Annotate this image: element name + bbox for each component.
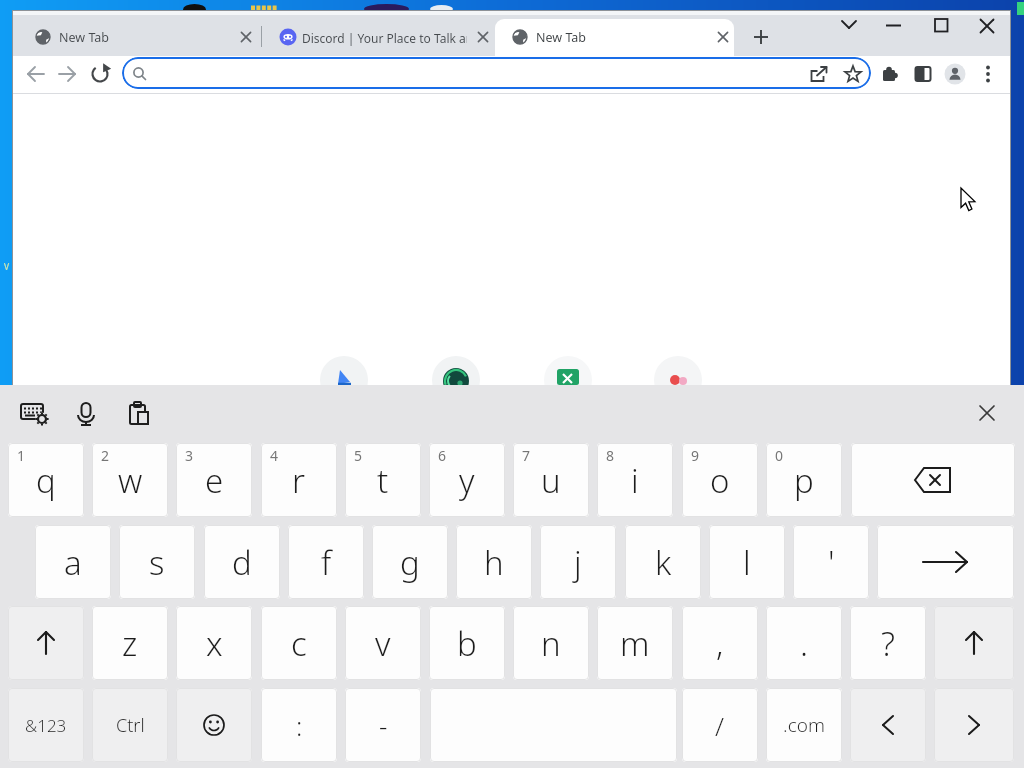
- button[interactable]: [944, 63, 966, 85]
- button[interactable]: j: [540, 525, 616, 599]
- button[interactable]: [912, 63, 934, 85]
- button[interactable]: u: [513, 443, 589, 517]
- button[interactable]: :: [261, 688, 337, 762]
- staticText: -: [379, 708, 388, 743]
- button[interactable]: New Tab: [495, 19, 734, 56]
- button[interactable]: l: [709, 525, 785, 599]
- staticText: t: [377, 458, 389, 503]
- staticText: ?: [881, 621, 895, 666]
- staticText: 4: [270, 446, 279, 465]
- staticText: b: [457, 621, 477, 666]
- button[interactable]: ,: [682, 606, 758, 680]
- staticText: q: [36, 458, 56, 503]
- button[interactable]: [122, 57, 871, 89]
- button[interactable]: s: [119, 525, 195, 599]
- button[interactable]: [8, 606, 84, 680]
- button[interactable]: o: [682, 443, 758, 517]
- button[interactable]: e: [176, 443, 252, 517]
- button[interactable]: ': [793, 525, 869, 599]
- button[interactable]: t: [345, 443, 421, 517]
- button[interactable]: [89, 63, 111, 85]
- button[interactable]: ?: [850, 606, 926, 680]
- staticText: 5: [354, 446, 363, 465]
- button[interactable]: -: [345, 688, 421, 762]
- staticText: z: [122, 621, 138, 666]
- button[interactable]: [25, 63, 47, 85]
- button[interactable]: b: [429, 606, 505, 680]
- button[interactable]: [850, 688, 926, 762]
- button[interactable]: .com: [766, 688, 842, 762]
- button[interactable]: [877, 525, 1014, 599]
- button[interactable]: p: [766, 443, 842, 517]
- button[interactable]: g: [372, 525, 448, 599]
- staticText: y: [459, 458, 475, 503]
- staticText: f: [321, 540, 332, 585]
- staticText: v: [375, 621, 391, 666]
- button[interactable]: [842, 63, 864, 85]
- button[interactable]: w: [92, 443, 168, 517]
- staticText: n: [541, 621, 561, 666]
- button[interactable]: .: [766, 606, 842, 680]
- button[interactable]: [238, 29, 254, 45]
- button[interactable]: a: [35, 525, 111, 599]
- button[interactable]: z: [92, 606, 168, 680]
- button[interactable]: q: [8, 443, 84, 517]
- staticText: k: [655, 540, 672, 585]
- staticText: /: [715, 708, 725, 743]
- button[interactable]: [74, 400, 98, 428]
- button[interactable]: [56, 63, 78, 85]
- staticText: New Tab: [536, 29, 587, 46]
- staticText: 0: [775, 446, 784, 465]
- button[interactable]: n: [513, 606, 589, 680]
- button[interactable]: k: [625, 525, 701, 599]
- button[interactable]: [934, 18, 949, 33]
- button[interactable]: x: [176, 606, 252, 680]
- button[interactable]: [130, 64, 150, 84]
- button[interactable]: h: [456, 525, 532, 599]
- button[interactable]: d: [204, 525, 280, 599]
- staticText: j: [574, 540, 582, 585]
- button[interactable]: i: [597, 443, 673, 517]
- staticText: ': [828, 540, 835, 585]
- staticText: 7: [522, 446, 531, 465]
- button[interactable]: v: [345, 606, 421, 680]
- button[interactable]: [851, 443, 1015, 517]
- button[interactable]: [879, 63, 901, 85]
- button[interactable]: Ctrl: [92, 688, 168, 762]
- staticText: Discord | Your Place to Talk and Ha: [302, 30, 467, 46]
- button[interactable]: c: [261, 606, 337, 680]
- button[interactable]: New Tab: [26, 18, 256, 56]
- button[interactable]: [840, 18, 858, 32]
- button[interactable]: [430, 688, 677, 762]
- staticText: o: [710, 458, 730, 503]
- button[interactable]: y: [429, 443, 505, 517]
- button[interactable]: [978, 63, 998, 85]
- button[interactable]: m: [597, 606, 673, 680]
- button[interactable]: [20, 400, 50, 428]
- staticText: e: [205, 458, 224, 503]
- button[interactable]: f: [288, 525, 364, 599]
- staticText: .com: [783, 712, 825, 738]
- button[interactable]: [978, 404, 996, 422]
- button[interactable]: [934, 606, 1014, 680]
- button[interactable]: [979, 18, 995, 34]
- button[interactable]: [715, 29, 731, 45]
- staticText: ,: [716, 621, 724, 666]
- button[interactable]: [934, 688, 1014, 762]
- staticText: 9: [691, 446, 700, 465]
- button[interactable]: [475, 29, 491, 45]
- button[interactable]: [176, 688, 252, 762]
- button[interactable]: [886, 24, 902, 28]
- button[interactable]: [808, 63, 830, 85]
- staticText: l: [743, 540, 751, 585]
- button[interactable]: &123: [8, 688, 84, 762]
- button[interactable]: r: [261, 443, 337, 517]
- button[interactable]: /: [682, 688, 758, 762]
- button[interactable]: [752, 28, 770, 46]
- staticText: d: [232, 540, 252, 585]
- staticText: s: [149, 540, 165, 585]
- staticText: 8: [606, 446, 615, 465]
- button[interactable]: [126, 400, 152, 428]
- button[interactable]: Discord | Your Place to Talk and Ha: [268, 18, 496, 56]
- staticText: 3: [185, 446, 194, 465]
